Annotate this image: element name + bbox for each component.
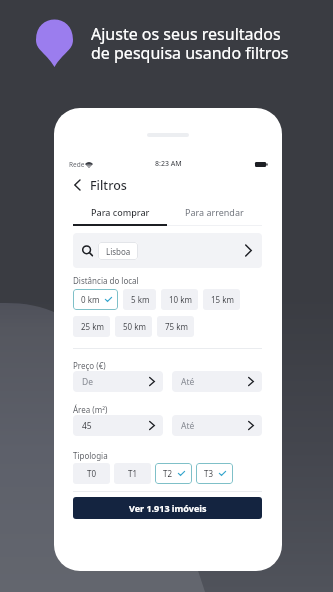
staticText: T3 <box>204 468 214 479</box>
staticText: 45 <box>82 420 92 432</box>
staticText: T0 <box>87 468 97 479</box>
button[interactable]: T3 <box>196 463 233 484</box>
staticText: 5 km <box>131 294 150 305</box>
staticText: Ver 1.913 imóveis <box>129 502 207 514</box>
button[interactable]: 50 km <box>115 316 152 337</box>
button[interactable]: Ver 1.913 imóveis <box>73 497 262 519</box>
button[interactable]: Para comprar <box>73 204 167 226</box>
staticText: Distância do local <box>73 275 139 286</box>
button[interactable]: 45 <box>73 415 163 436</box>
staticText: T1 <box>128 468 138 479</box>
staticText: Para comprar <box>91 206 150 218</box>
staticText: Rede <box>69 160 85 169</box>
staticText: De <box>82 376 93 388</box>
staticText: 0 km <box>81 294 100 305</box>
button[interactable]: Lisboa <box>73 233 262 268</box>
staticText: 15 km <box>211 294 234 305</box>
staticText: Até <box>181 376 195 388</box>
staticText: T2 <box>163 468 173 479</box>
staticText: Lisboa <box>106 246 131 257</box>
staticText: 75 km <box>165 321 188 332</box>
staticText: Até <box>181 420 195 432</box>
button[interactable]: 25 km <box>73 316 110 337</box>
button[interactable]: Back <box>69 177 85 193</box>
button[interactable]: Para arrendar <box>167 204 262 226</box>
button[interactable]: 75 km <box>157 316 194 337</box>
button[interactable]: 10 km <box>161 289 198 310</box>
button[interactable]: Até <box>172 371 262 392</box>
staticText: Ajuste os seus resultados de pesquisa us… <box>91 23 289 63</box>
button[interactable]: 0 km <box>73 289 118 310</box>
button[interactable]: Até <box>172 415 262 436</box>
button[interactable]: T2 <box>155 463 192 484</box>
button[interactable]: T0 <box>73 463 110 484</box>
staticText: 10 km <box>169 294 192 305</box>
staticText: Preço (€) <box>73 360 106 371</box>
staticText: Tipologia <box>73 450 108 461</box>
staticText: 50 km <box>123 321 146 332</box>
button[interactable]: 15 km <box>203 289 240 310</box>
staticText: 8:23 AM <box>155 159 182 169</box>
button[interactable]: 5 km <box>123 289 156 310</box>
staticText: 25 km <box>81 321 104 332</box>
staticText: Para arrendar <box>185 206 244 218</box>
staticText: Área (m²) <box>73 404 108 415</box>
button[interactable]: De <box>73 371 163 392</box>
staticText: Filtros <box>90 177 127 194</box>
button[interactable]: T1 <box>114 463 151 484</box>
